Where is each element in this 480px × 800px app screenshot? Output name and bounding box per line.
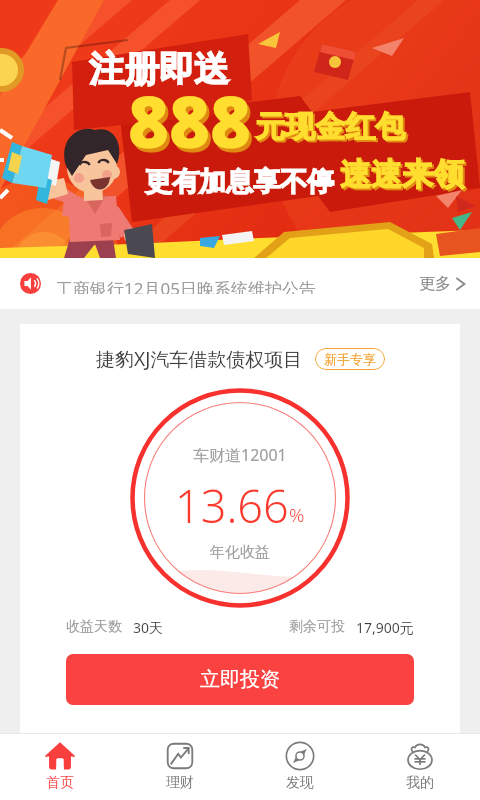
button[interactable]: 立即投资: [66, 654, 414, 705]
button[interactable]: 首页: [0, 734, 120, 800]
staticText: 新手专享: [324, 351, 376, 367]
staticText: 我的: [406, 774, 434, 792]
staticText: 17,900元: [356, 618, 414, 637]
staticText: 更有加息享不停: [145, 165, 334, 199]
button[interactable]: 发现: [240, 734, 360, 800]
staticText: 工商银行12月05日晚系统维护公告: [56, 281, 316, 294]
staticText: 元现金红包: [257, 110, 407, 148]
staticText: 元现金红包: [255, 108, 405, 146]
staticText: 剩余可投: [289, 618, 345, 636]
staticText: 理财: [166, 774, 194, 792]
staticText: 13.66: [175, 475, 289, 536]
staticText: 首页: [46, 774, 74, 792]
staticText: 888: [128, 73, 252, 168]
button[interactable]: 注册即送888元现金红包: [0, 0, 480, 258]
button[interactable]: 理财: [120, 734, 240, 800]
staticText: 立即投资: [200, 667, 280, 692]
staticText: 888: [131, 77, 255, 172]
staticText: 车财道12001: [193, 444, 287, 466]
staticText: 年化收益: [210, 543, 270, 562]
button[interactable]: 更多: [419, 274, 480, 294]
button[interactable]: 工商银行12月05日晚系统维护公告: [0, 258, 480, 309]
staticText: 速速来领: [342, 157, 466, 196]
staticText: 速速来领: [340, 155, 464, 194]
staticText: %: [289, 502, 305, 528]
button[interactable]: 我的: [360, 734, 480, 800]
staticText: 更多: [419, 274, 451, 294]
staticText: 捷豹XJ汽车借款债权项目: [96, 346, 303, 372]
button[interactable]: 捷豹XJ汽车借款债权项目: [20, 324, 460, 733]
staticText: 收益天数: [66, 618, 122, 636]
staticText: 注册即送: [89, 47, 229, 91]
staticText: 30天: [133, 618, 164, 637]
staticText: 发现: [286, 774, 314, 792]
